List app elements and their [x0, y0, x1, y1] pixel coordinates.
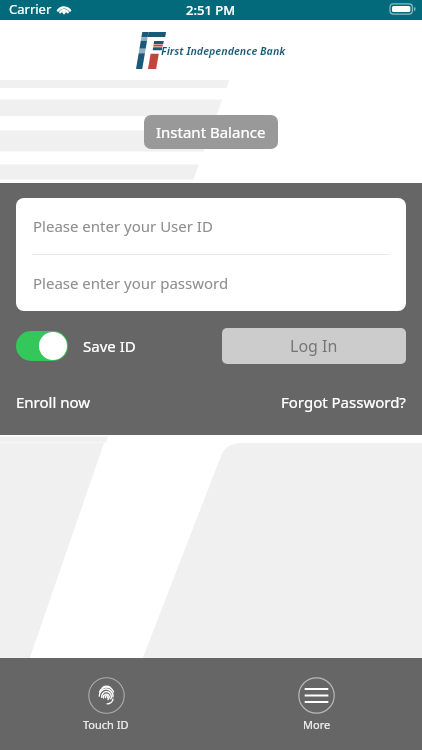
- staticText: More: [303, 717, 331, 732]
- other: More: [298, 677, 335, 714]
- button[interactable]: Save ID: [16, 331, 136, 361]
- staticText: First Independence Bank: [161, 44, 286, 58]
- button[interactable]: Instant Balance: [144, 115, 278, 149]
- staticText: Log In: [290, 335, 338, 357]
- staticText: Carrier: [9, 0, 52, 18]
- button[interactable]: Please enter your password: [16, 255, 406, 311]
- staticText: Please enter your password: [33, 273, 229, 293]
- button[interactable]: Please enter your User ID: [16, 198, 406, 254]
- button[interactable]: More: [294, 673, 339, 736]
- button[interactable]: Forgot Password?: [281, 392, 406, 412]
- staticText: Touch ID: [83, 717, 129, 732]
- staticText: Save ID: [83, 336, 136, 356]
- staticText: Instant Balance: [156, 122, 266, 142]
- button[interactable]: Log In: [222, 328, 406, 364]
- other: Touch ID: [88, 677, 125, 714]
- button[interactable]: Enroll now: [16, 392, 91, 412]
- staticText: 2:51 PM: [186, 1, 236, 19]
- staticText: Please enter your User ID: [33, 216, 213, 236]
- button[interactable]: Touch ID: [79, 673, 133, 736]
